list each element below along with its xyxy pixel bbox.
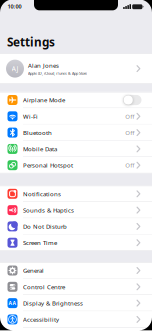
button[interactable]: AJ (0, 53, 152, 84)
staticText: Control Centre (23, 283, 65, 291)
staticText: Mobile Data (23, 145, 57, 153)
staticText: Personal Hotspot (23, 161, 73, 169)
button[interactable]: Notifications (0, 186, 152, 202)
staticText: AJ (11, 64, 18, 73)
staticText: Settings (7, 34, 55, 50)
staticText: Display & Brightness (23, 299, 83, 307)
staticText: Off (125, 128, 134, 137)
staticText: General (23, 266, 44, 275)
button[interactable]: Mobile Data (0, 141, 152, 157)
staticText: Alan Jones (28, 61, 59, 70)
button[interactable]: Personal Hotspot (0, 157, 152, 173)
staticText: Off (125, 161, 134, 169)
staticText: Notifications (23, 190, 61, 198)
staticText: Wi-Fi (23, 112, 38, 120)
staticText: 10:00 (7, 3, 21, 10)
staticText: Apple ID, iCloud, iTunes & App Store (28, 71, 87, 76)
button[interactable]: General (0, 262, 152, 279)
staticText: AA (8, 300, 16, 307)
button[interactable]: Screen Time (0, 235, 152, 251)
button[interactable]: Wi-Fi (0, 108, 152, 124)
staticText: Do Not Disturb (23, 222, 67, 230)
button[interactable]: Control Centre (0, 279, 152, 295)
staticText: Airplane Mode (23, 96, 65, 104)
button[interactable]: Accessibility (0, 311, 152, 328)
staticText: Accessibility (23, 315, 59, 323)
staticText: Screen Time (23, 239, 57, 247)
button[interactable]: AA (0, 295, 152, 311)
staticText: Sounds & Haptics (23, 206, 74, 214)
button[interactable]: Sounds & Haptics (0, 202, 152, 218)
staticText: Off (125, 112, 134, 120)
button[interactable]: Do Not Disturb (0, 218, 152, 235)
button[interactable]: Airplane Mode (0, 92, 152, 108)
button[interactable]: Bluetooth (0, 124, 152, 141)
staticText: Bluetooth (23, 128, 52, 137)
